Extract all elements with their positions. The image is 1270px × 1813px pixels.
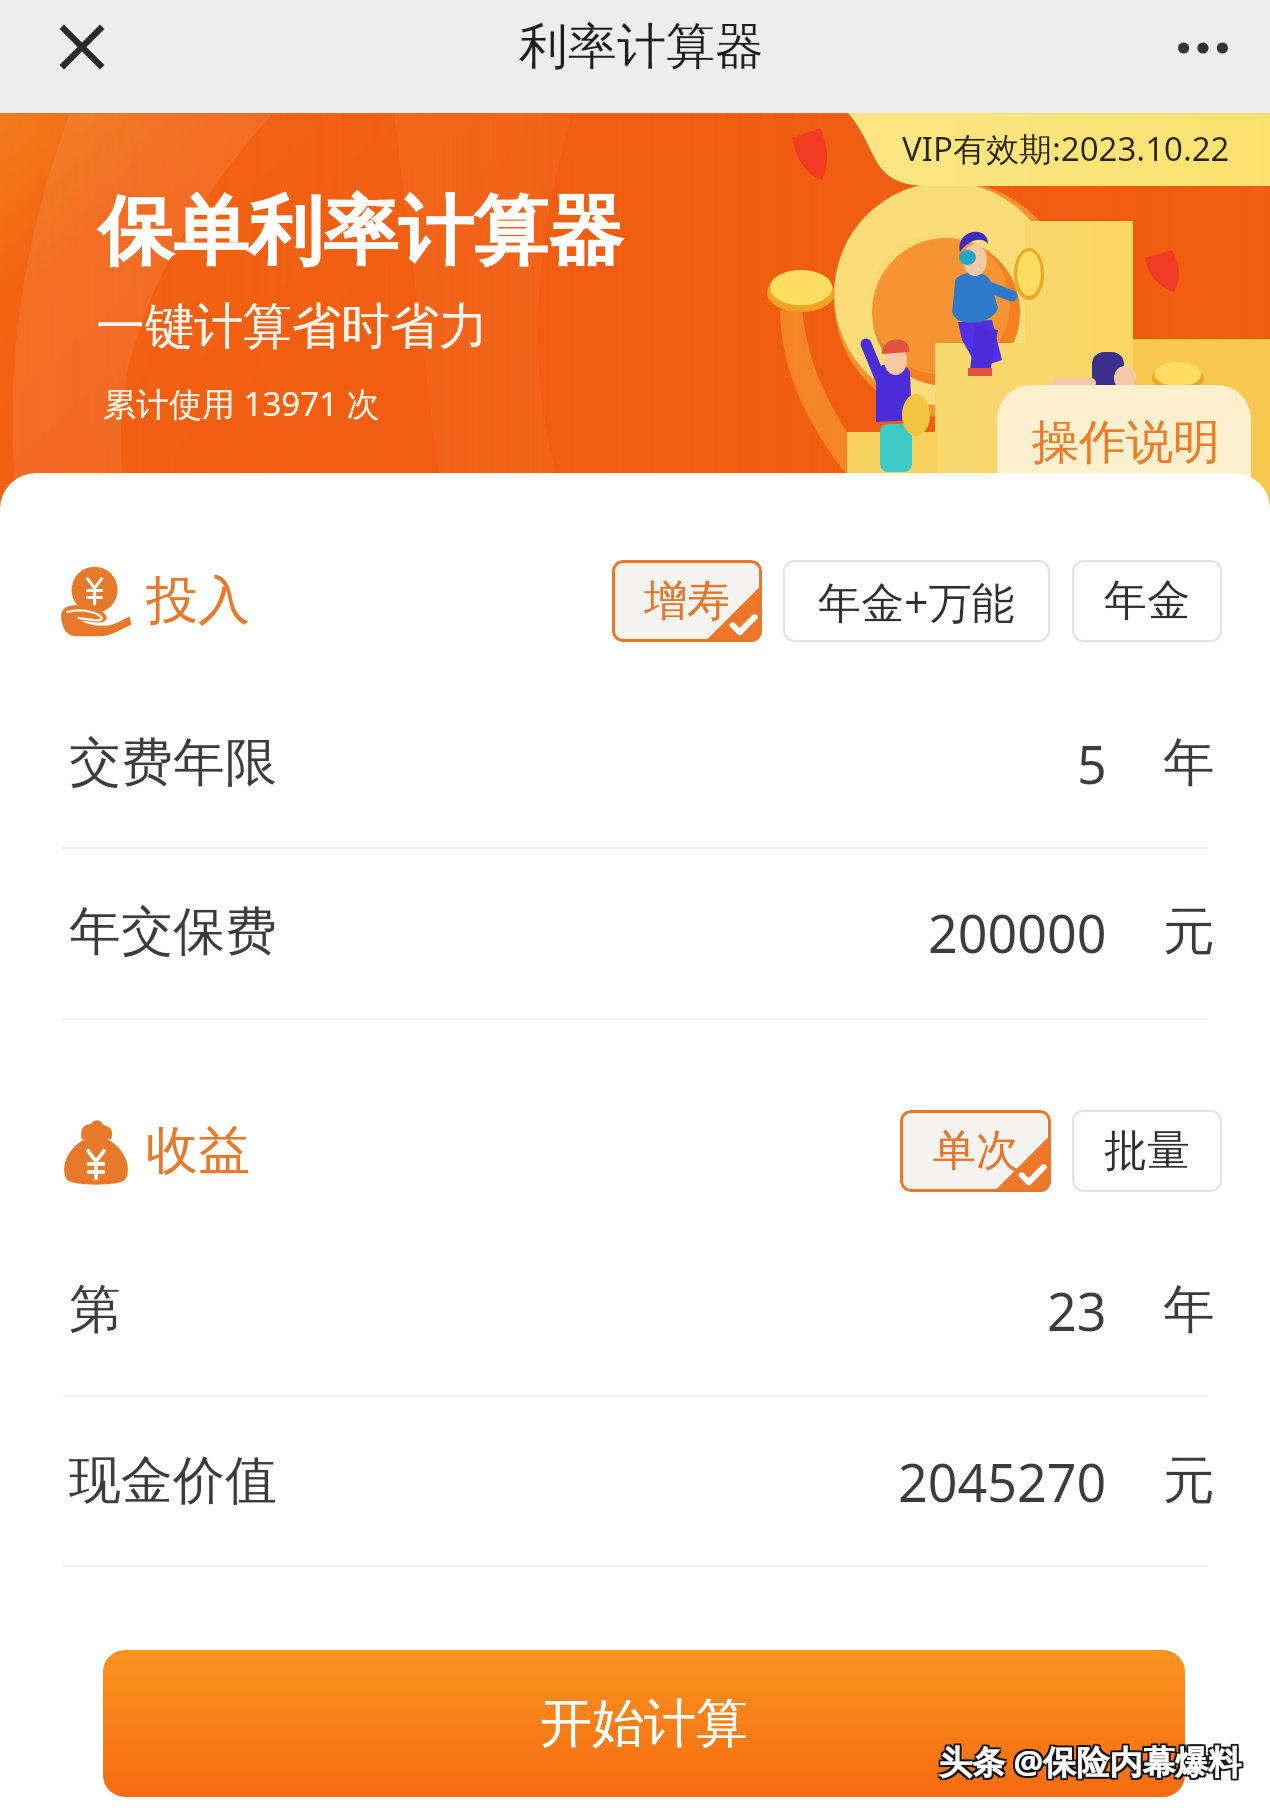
staticText: 保单利率计算器	[98, 185, 623, 279]
button[interactable]: Close	[42, 7, 122, 87]
button[interactable]: 批量	[1072, 1110, 1222, 1192]
staticText: 第	[69, 1277, 121, 1343]
staticText: 元	[1163, 899, 1215, 965]
staticText: 开始计算	[540, 1691, 748, 1757]
staticText: 元	[1163, 1448, 1215, 1514]
button[interactable]: 单次	[900, 1110, 1051, 1192]
staticText: 年	[1163, 730, 1215, 796]
staticText: 头条 @保险内幕爆料	[939, 1737, 1242, 1782]
staticText: 现金价值	[69, 1448, 277, 1514]
staticText: 交费年限	[69, 730, 277, 796]
staticText: 年金	[1104, 574, 1190, 628]
button[interactable]: 增寿	[612, 560, 762, 642]
staticText: 头条 @保险内幕爆料	[941, 1737, 1244, 1782]
staticText: 头条 @保险内幕爆料	[937, 1737, 1240, 1782]
staticText: 年金+万能	[818, 572, 1015, 631]
staticText: 年	[1163, 1277, 1215, 1343]
button[interactable]: 年金	[1072, 560, 1222, 642]
staticText: 一键计算省时省力	[96, 296, 488, 358]
staticText: 操作说明	[1032, 413, 1220, 472]
button[interactable]: 现金价值	[0, 1421, 1270, 1541]
button[interactable]: 年交保费	[0, 872, 1270, 992]
staticText: 头条 @保险内幕爆料	[939, 1741, 1242, 1786]
staticText: 收益	[146, 1118, 250, 1184]
button[interactable]: More options	[1163, 8, 1243, 88]
staticText: 头条 @保险内幕爆料	[941, 1741, 1244, 1786]
staticText: 单次	[933, 1124, 1019, 1178]
staticText: 5	[1077, 728, 1107, 799]
staticText: 累计使用 13971 次	[103, 381, 380, 426]
staticText: 批量	[1104, 1124, 1190, 1178]
staticText: VIP有效期:2023.10.22	[902, 126, 1230, 171]
button[interactable]: 操作说明	[997, 385, 1251, 520]
staticText: 利率计算器	[519, 16, 764, 78]
staticText: 2045270	[898, 1446, 1107, 1517]
staticText: 年交保费	[69, 899, 277, 965]
staticText: 头条 @保险内幕爆料	[937, 1741, 1240, 1786]
button[interactable]: 交费年限	[0, 703, 1270, 823]
button[interactable]: 开始计算	[103, 1650, 1185, 1797]
button[interactable]: 年金+万能	[783, 560, 1050, 642]
staticText: 头条 @保险内幕爆料	[941, 1739, 1244, 1784]
staticText: 投入	[146, 568, 250, 634]
staticText: 23	[1047, 1275, 1107, 1346]
button[interactable]: 第	[0, 1250, 1270, 1370]
staticText: 200000	[928, 897, 1107, 968]
staticText: 头条 @保险内幕爆料	[937, 1739, 1240, 1784]
staticText: 头条 @保险内幕爆料	[939, 1739, 1242, 1784]
staticText: 增寿	[644, 574, 730, 628]
